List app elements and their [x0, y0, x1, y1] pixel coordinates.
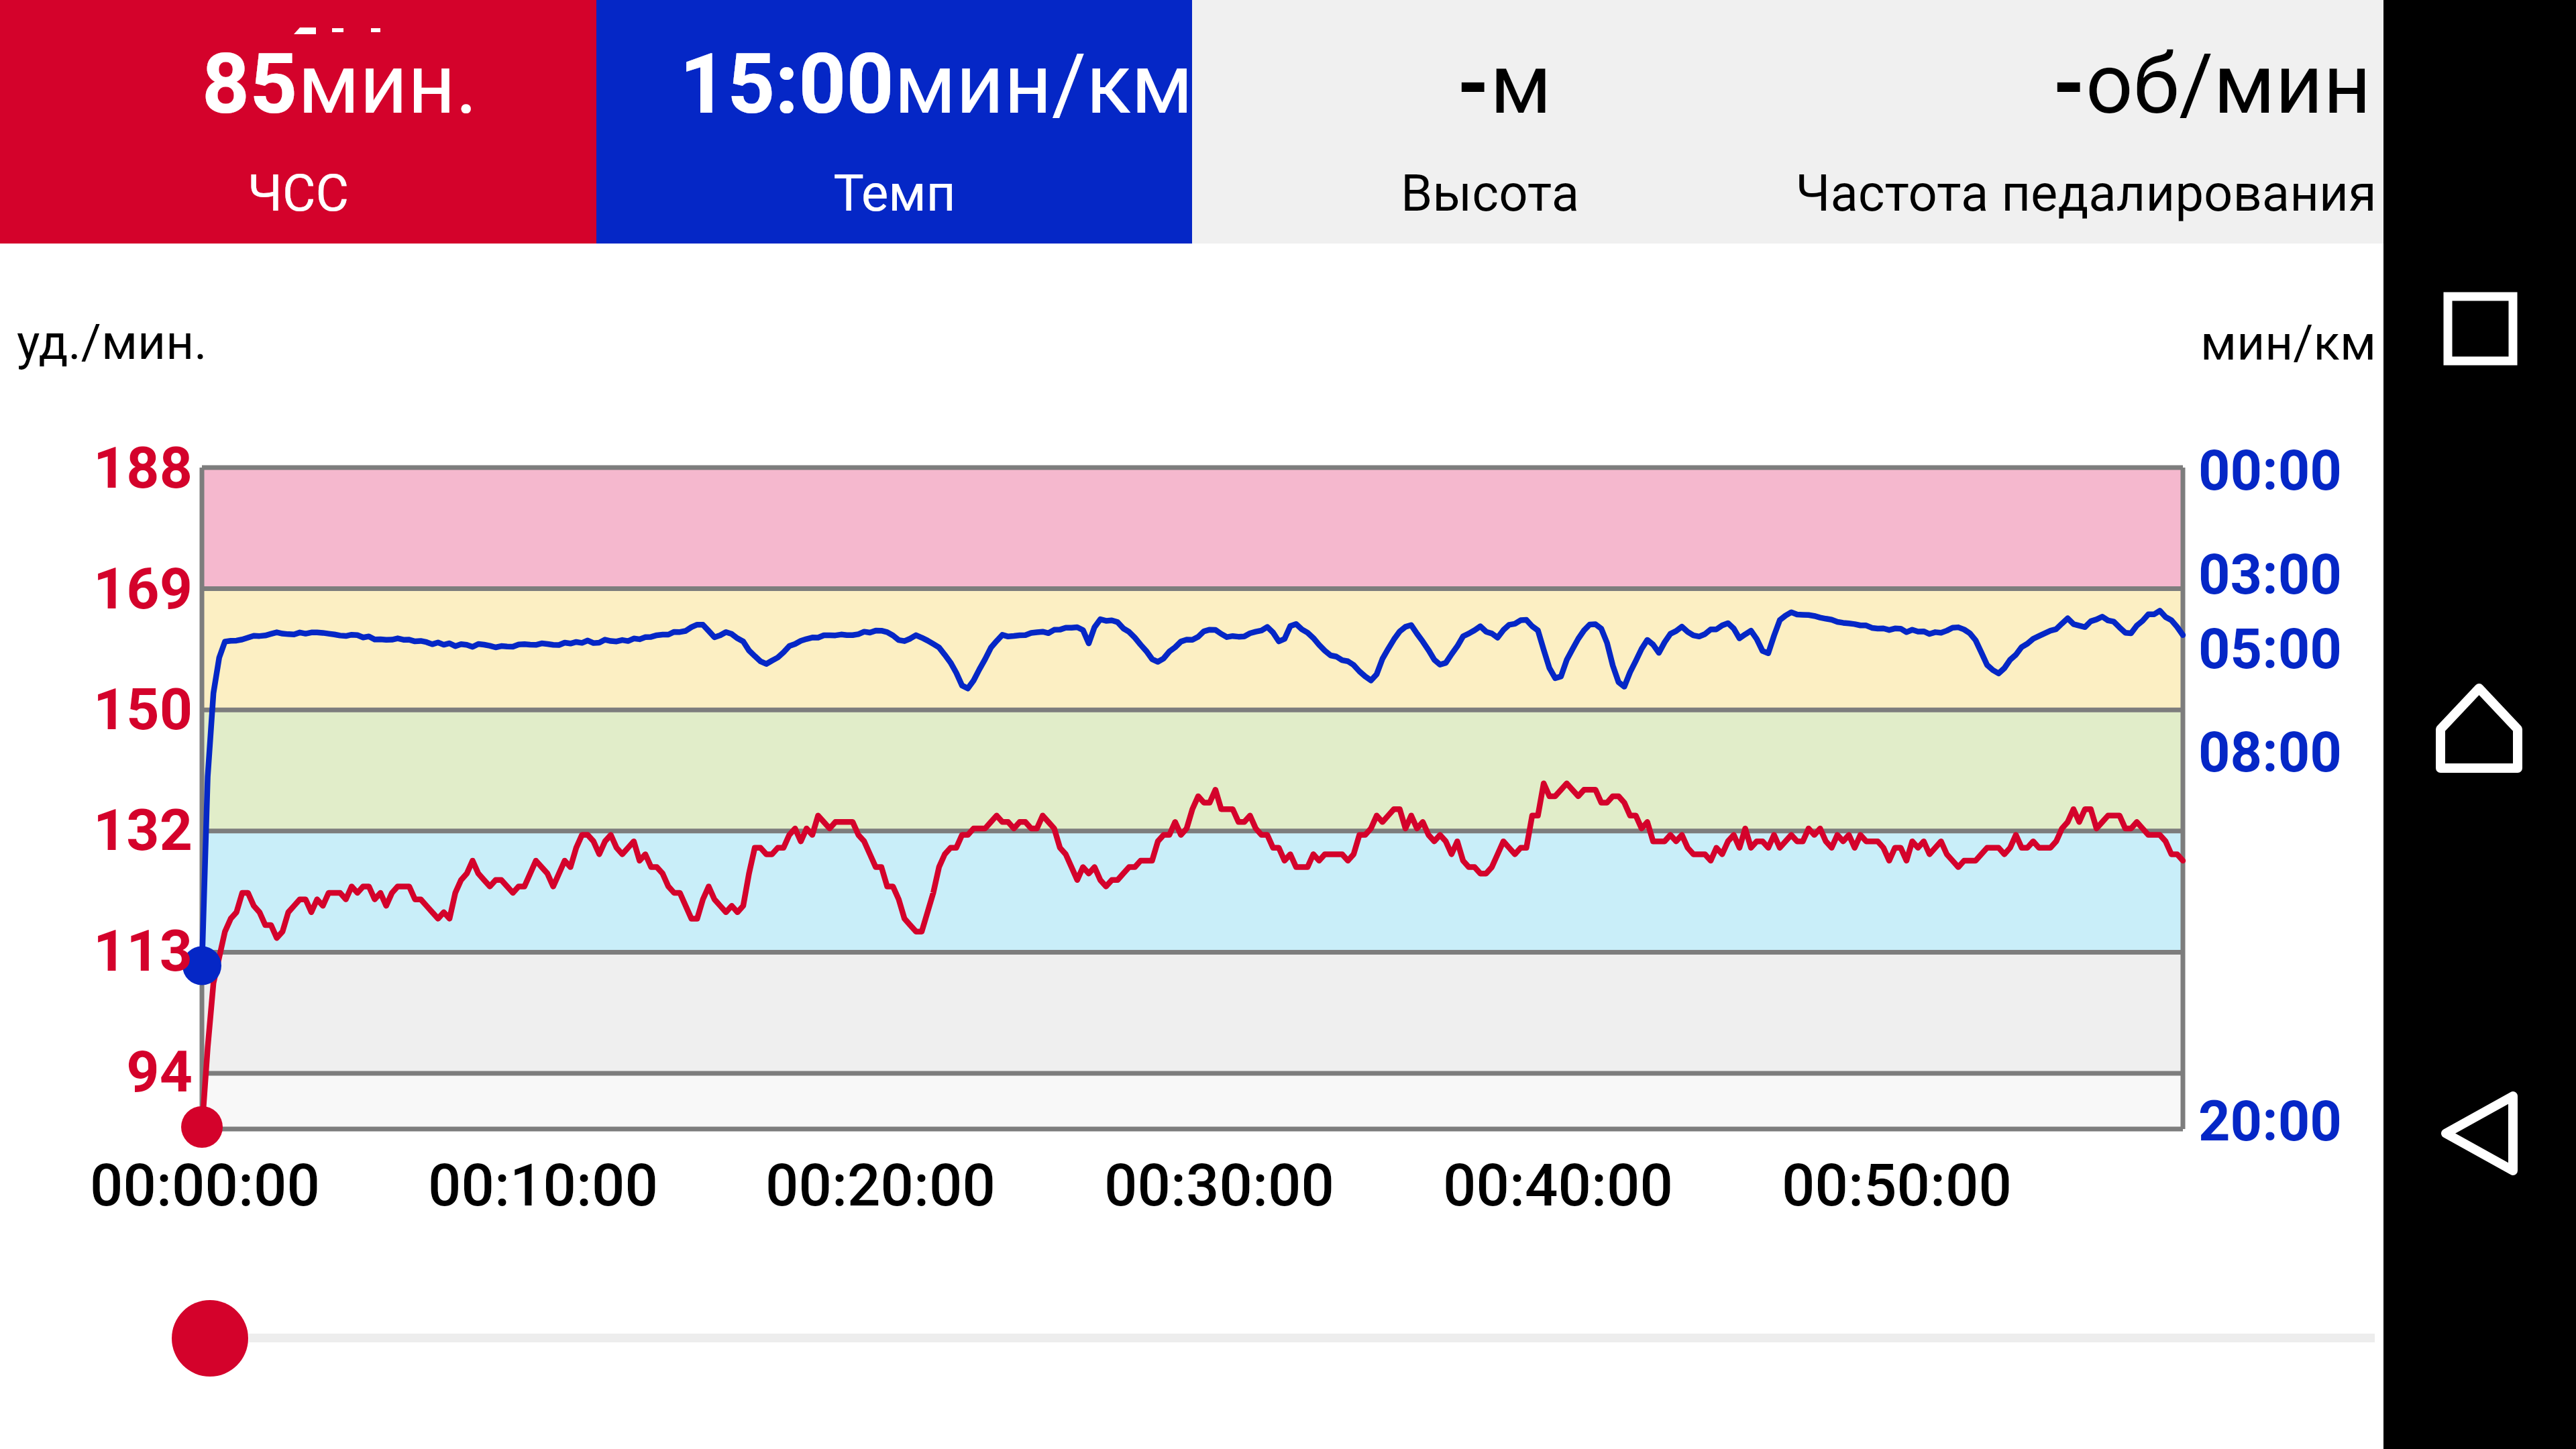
staticText: 113	[93, 917, 193, 985]
staticText: Высота	[1401, 163, 1579, 223]
staticText: мин.	[298, 36, 478, 133]
staticText: 169	[93, 555, 193, 623]
button[interactable]: Home	[2414, 661, 2548, 796]
staticText: 188	[93, 434, 193, 502]
button[interactable]: 85	[0, 0, 596, 244]
staticText: -	[1457, 36, 1490, 133]
staticText: 08:00	[2198, 720, 2342, 785]
staticText: 03:00	[2198, 542, 2342, 607]
staticText: ЧСС	[248, 163, 349, 223]
button[interactable]: 15:00	[596, 0, 1192, 244]
staticText: 00:10:00	[428, 1151, 658, 1220]
staticText: Темп	[833, 163, 956, 223]
staticText: мин/км	[2200, 314, 2377, 372]
staticText: уд./мин.	[17, 313, 207, 371]
staticText: м	[1490, 36, 1552, 133]
staticText: 05:00	[2198, 616, 2342, 682]
button[interactable]: Back	[2419, 1069, 2546, 1197]
button[interactable]: Timeline position	[172, 1300, 2375, 1377]
staticText: 00:40:00	[1443, 1151, 1673, 1220]
staticText: Частота педалирования	[1795, 163, 2377, 223]
staticText: 00:50:00	[1782, 1151, 2012, 1220]
button[interactable]: -	[1192, 0, 1788, 244]
staticText: 00:00:00	[90, 1151, 320, 1220]
button[interactable]: -	[1788, 0, 2383, 244]
staticText: 00:20:00	[765, 1151, 996, 1220]
staticText: 20:00	[2198, 1089, 2342, 1154]
staticText: 00:30:00	[1104, 1151, 1334, 1220]
staticText: об/мин	[2086, 36, 2371, 133]
staticText: 15:00	[680, 36, 894, 133]
button[interactable]: Recent apps	[2421, 270, 2539, 388]
staticText: 00:00	[2198, 438, 2342, 503]
staticText: 94	[126, 1038, 193, 1106]
staticText: -	[2053, 36, 2086, 133]
staticText: 132	[93, 796, 193, 864]
staticText: 150	[93, 676, 193, 743]
staticText: мин/км	[894, 36, 1192, 133]
staticText: 85	[202, 36, 298, 133]
